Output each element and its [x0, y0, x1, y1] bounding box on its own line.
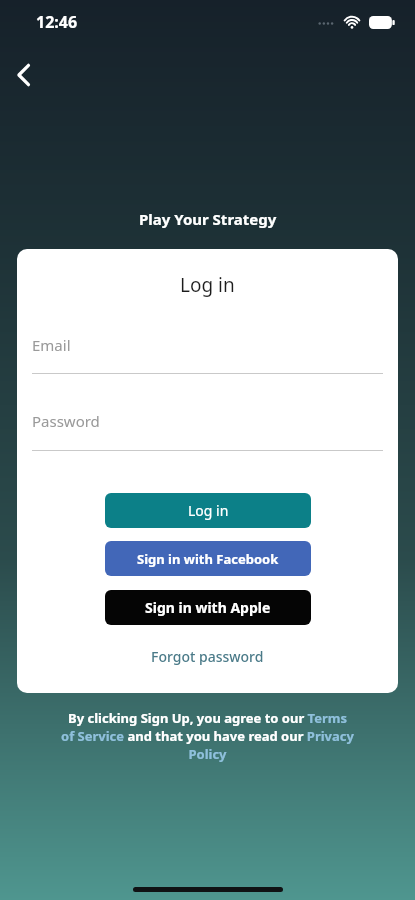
staticText: By clicking Sign Up, you agree to our Te…: [60, 709, 355, 763]
staticText: Log in: [188, 501, 229, 520]
staticText: Email: [32, 335, 71, 355]
staticText: Play Your Strategy: [139, 209, 277, 229]
button[interactable]: Back: [4, 55, 44, 95]
staticText: Sign in with Facebook: [137, 550, 279, 568]
staticText: Log in: [180, 272, 235, 298]
staticText: Sign in with Apple: [145, 598, 271, 617]
staticText: Password: [32, 411, 100, 431]
button[interactable]: Sign in with Apple: [105, 590, 311, 625]
button[interactable]: Sign in with Facebook: [105, 541, 311, 576]
button[interactable]: Forgot password: [17, 642, 398, 670]
button[interactable]: By clicking Sign Up, you agree to our Te…: [60, 709, 355, 763]
button[interactable]: Log in: [105, 493, 311, 528]
staticText: Forgot password: [151, 647, 264, 666]
staticText: 12:46: [36, 11, 78, 33]
